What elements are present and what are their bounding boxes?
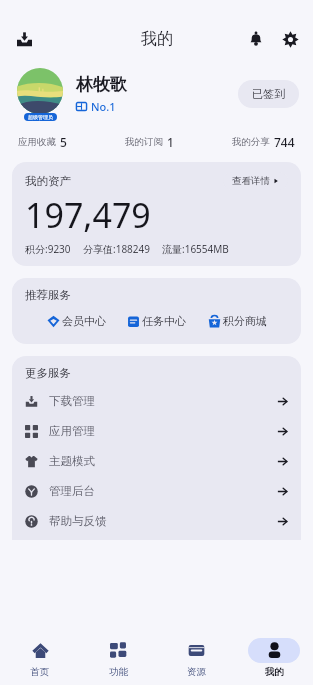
button[interactable]: 主题模式: [25, 446, 288, 476]
staticText: 我的资产: [25, 174, 223, 188]
staticText: 下载管理: [49, 394, 277, 408]
button[interactable]: 任务中心: [127, 314, 186, 328]
staticText: 首页: [30, 666, 49, 678]
button[interactable]: 超级管理员: [14, 68, 299, 120]
button[interactable]: Settings: [275, 24, 305, 54]
staticText: 积分商城: [223, 314, 267, 328]
staticText: 1: [167, 134, 174, 150]
button[interactable]: 资源: [157, 630, 235, 685]
staticText: 推荐服务: [25, 288, 71, 302]
staticText: 查看详情: [232, 175, 270, 187]
staticText: No.1: [91, 99, 116, 114]
button[interactable]: 帮助与反馈: [25, 506, 288, 536]
button[interactable]: Downloads: [8, 23, 40, 55]
button[interactable]: 我的分享: [232, 134, 295, 150]
staticText: 744: [274, 134, 295, 150]
staticText: 帮助与反馈: [49, 514, 277, 528]
staticText: 197,479: [25, 192, 151, 238]
button[interactable]: 下载管理: [25, 386, 288, 416]
staticText: 我的: [265, 666, 284, 678]
button[interactable]: 应用收藏: [18, 134, 67, 150]
staticText: 分享值:188249: [83, 242, 150, 256]
button[interactable]: Notifications: [241, 24, 271, 54]
button[interactable]: 应用管理: [25, 416, 288, 446]
staticText: 我的分享: [232, 136, 270, 148]
staticText: 我的订阅: [125, 136, 163, 148]
button[interactable]: 会员中心: [47, 314, 106, 328]
staticText: 任务中心: [142, 314, 186, 328]
button[interactable]: 已签到: [238, 80, 299, 108]
staticText: 功能: [109, 666, 128, 678]
button[interactable]: 我的: [235, 630, 313, 685]
staticText: 积分:9230: [25, 242, 71, 256]
staticText: 应用收藏: [18, 136, 56, 148]
staticText: 超级管理员: [28, 114, 53, 120]
button[interactable]: 首页: [0, 630, 79, 685]
staticText: 我的: [141, 29, 173, 49]
staticText: 资源: [187, 666, 206, 678]
staticText: 管理后台: [49, 484, 277, 498]
button[interactable]: 查看详情: [223, 172, 288, 190]
staticText: 已签到: [252, 87, 285, 101]
staticText: 林牧歌: [76, 74, 127, 95]
staticText: 5: [60, 134, 67, 150]
staticText: 会员中心: [62, 314, 106, 328]
staticText: 更多服务: [25, 366, 71, 380]
button[interactable]: 管理后台: [25, 476, 288, 506]
button[interactable]: 我的订阅: [125, 134, 174, 150]
staticText: 应用管理: [49, 424, 277, 438]
staticText: 主题模式: [49, 454, 277, 468]
button[interactable]: 积分商城: [208, 314, 267, 328]
button[interactable]: 功能: [79, 630, 157, 685]
staticText: 流量:16554MB: [162, 242, 229, 256]
